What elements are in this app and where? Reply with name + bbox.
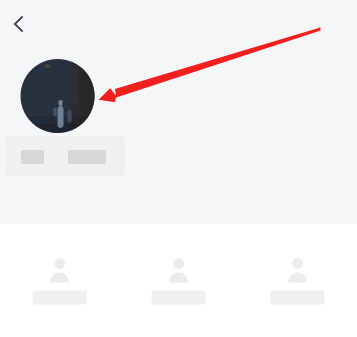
button[interactable]: Back	[0, 3, 40, 45]
button[interactable]: Message	[0, 246, 119, 316]
button[interactable]: More	[238, 246, 357, 316]
button[interactable]: Follow	[119, 246, 238, 316]
